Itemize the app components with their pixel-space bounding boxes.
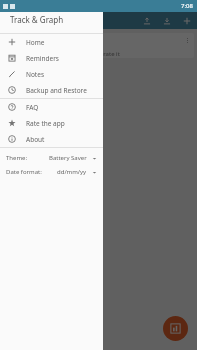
staticText: FAQ	[26, 103, 39, 112]
button[interactable]: Date format:	[6, 165, 97, 179]
button[interactable]: FAQ	[0, 99, 103, 115]
staticText: Reminders	[26, 54, 59, 63]
button[interactable]: Home	[0, 34, 103, 50]
staticText: Notes	[26, 70, 44, 79]
button[interactable]: Rate the app	[0, 115, 103, 131]
staticText: Theme:	[6, 154, 28, 162]
button[interactable]	[103, 0, 197, 350]
button[interactable]: Add tracker	[163, 316, 188, 341]
staticText: 7:08	[181, 2, 193, 10]
button[interactable]: Reminders	[0, 50, 103, 66]
button[interactable]: Export	[141, 15, 153, 27]
staticText: No data has been tracked to generate it	[8, 50, 120, 58]
button[interactable]: Backup and Restore	[0, 82, 103, 98]
button[interactable]: Import	[161, 15, 173, 27]
button[interactable]: Notes	[0, 66, 103, 82]
staticText: Tracker 2	[8, 37, 43, 48]
button[interactable]: More options	[182, 35, 192, 45]
button[interactable]: Tracker 2	[3, 33, 194, 58]
staticText: About	[26, 135, 45, 144]
staticText: Battery Saver	[49, 154, 87, 162]
staticText: Rate the app	[26, 119, 65, 128]
staticText: dd/mm/yy	[57, 168, 87, 176]
staticText: Backup and Restore	[26, 86, 87, 95]
staticText: Date format:	[6, 168, 42, 176]
staticText: Track & Graph	[10, 14, 64, 25]
button[interactable]: Add	[181, 15, 193, 27]
button[interactable]: Theme:	[6, 151, 97, 165]
staticText: Home	[26, 38, 45, 47]
button[interactable]: About	[0, 131, 103, 147]
